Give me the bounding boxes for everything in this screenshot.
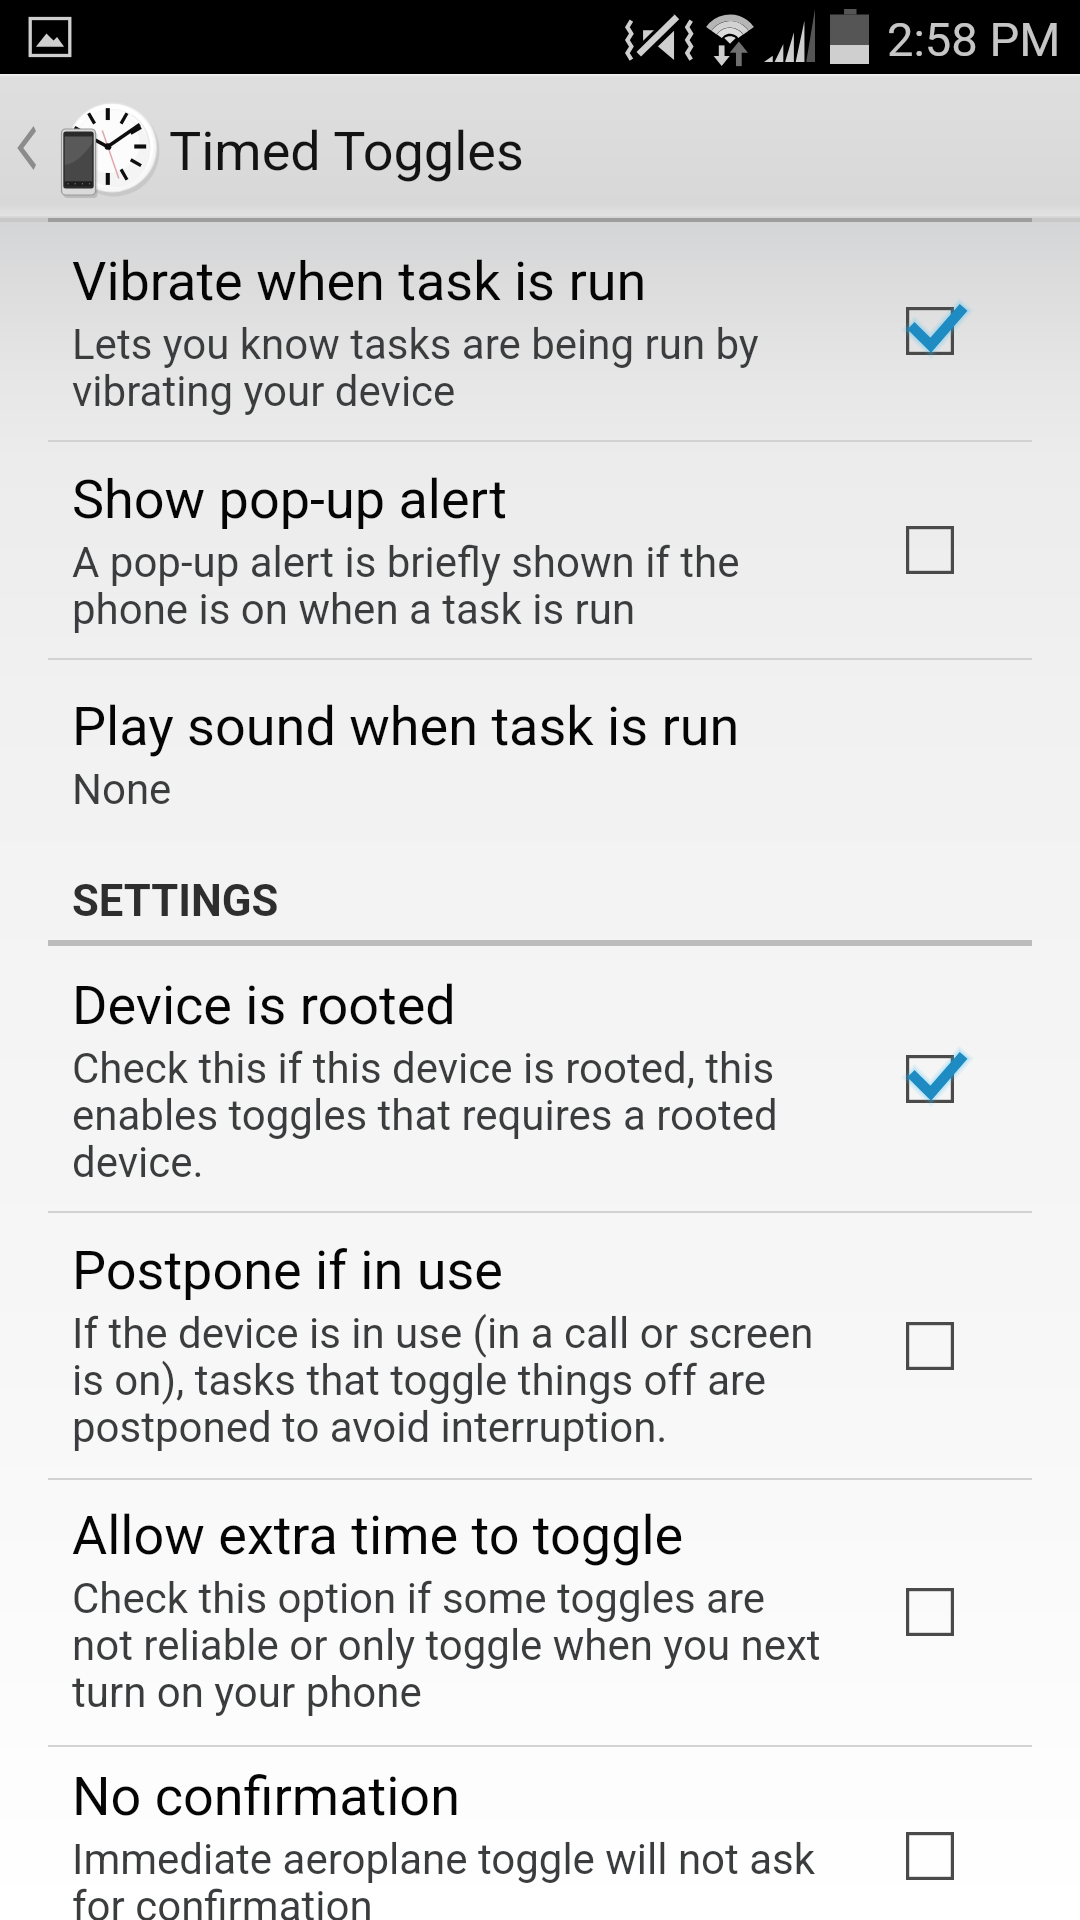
staticText: None — [72, 767, 172, 814]
button[interactable]: No confirmation — [0, 1747, 1080, 1920]
staticText: SETTINGS — [72, 876, 279, 927]
button[interactable]: Show pop-up alert — [0, 442, 1080, 658]
staticText: If the device is in use (in a call or sc… — [72, 1311, 830, 1452]
staticText: Allow extra time to toggle — [72, 1504, 684, 1567]
staticText: Show pop-up alert — [72, 468, 507, 531]
staticText: Check this option if some toggles are no… — [72, 1576, 830, 1717]
staticText: Immediate aeroplane toggle will not ask … — [72, 1837, 830, 1920]
staticText: Play sound when task is run — [72, 695, 740, 758]
staticText: Lets you know tasks are being run by vib… — [72, 322, 830, 416]
staticText: Device is rooted — [72, 974, 456, 1037]
button[interactable]: Allow extra time to toggle — [0, 1480, 1080, 1745]
staticText: Timed Toggles — [169, 120, 524, 183]
button[interactable]: Play sound when task is run — [0, 660, 1080, 860]
button[interactable]: Navigate up — [0, 74, 1080, 222]
staticText: 2:58 PM — [887, 12, 1061, 67]
button[interactable]: Vibrate when task is run — [0, 222, 1080, 440]
button[interactable]: Postpone if in use — [0, 1213, 1080, 1478]
button[interactable]: Device is rooted — [0, 946, 1080, 1211]
staticText: A pop-up alert is briefly shown if the p… — [72, 540, 830, 634]
staticText: No confirmation — [72, 1765, 460, 1828]
staticText: Check this if this device is rooted, thi… — [72, 1046, 830, 1187]
staticText: Postpone if in use — [72, 1239, 503, 1302]
staticText: Vibrate when task is run — [72, 250, 647, 313]
